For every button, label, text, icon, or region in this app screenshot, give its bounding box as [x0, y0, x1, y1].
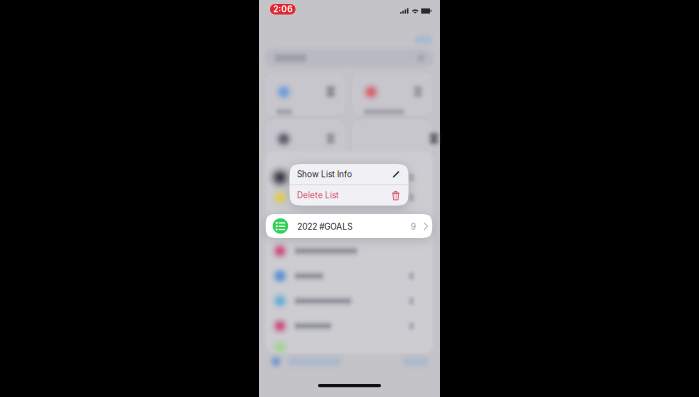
- button[interactable]: Delete List: [289, 185, 408, 206]
- staticText: Delete List: [297, 190, 339, 200]
- staticText: Show List Info: [297, 169, 352, 179]
- button[interactable]: Screen recording in progress, 2:06: [270, 4, 295, 14]
- staticText: 9: [411, 221, 416, 232]
- staticText: 2022 #GOALS: [297, 221, 352, 232]
- button[interactable]: 2022 #GOALS: [266, 214, 432, 238]
- staticText: 2:06: [273, 4, 292, 14]
- button[interactable]: Show List Info: [289, 164, 408, 184]
